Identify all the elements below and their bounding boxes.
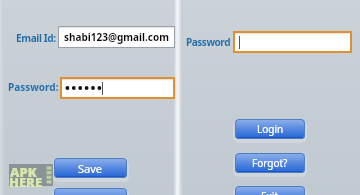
- staticText: Password: [186, 35, 231, 49]
- button[interactable]: Button: [54, 188, 127, 195]
- button[interactable]: Exit: [235, 186, 305, 195]
- staticText: Password:: [8, 80, 59, 94]
- staticText: shabi123@gmail.com: [64, 30, 169, 44]
- staticText: Exit: [261, 189, 279, 195]
- staticText: Forgot?: [252, 156, 288, 170]
- button[interactable]: Text field: [233, 31, 352, 53]
- staticText: Login: [257, 122, 284, 136]
- staticText: HERE: [9, 173, 43, 191]
- button[interactable]: shabi123@gmail.com: [58, 26, 175, 48]
- staticText: Email Id:: [16, 31, 56, 45]
- button[interactable]: Forgot?: [235, 153, 305, 173]
- button[interactable]: Login: [235, 119, 305, 139]
- button[interactable]: Text field: [60, 77, 175, 99]
- button[interactable]: Save: [54, 158, 127, 178]
- staticText: Save: [78, 161, 103, 176]
- staticText: APK: [10, 163, 37, 181]
